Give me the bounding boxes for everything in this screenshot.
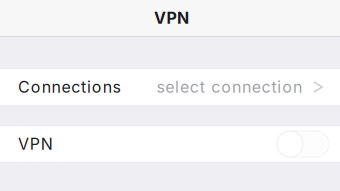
staticText: VPN <box>18 134 53 154</box>
staticText: Connections <box>18 77 120 97</box>
button[interactable]: VPN <box>277 131 340 157</box>
staticText: select connection <box>156 77 302 97</box>
staticText: VPN <box>154 8 189 28</box>
button[interactable]: Connections <box>0 68 340 106</box>
